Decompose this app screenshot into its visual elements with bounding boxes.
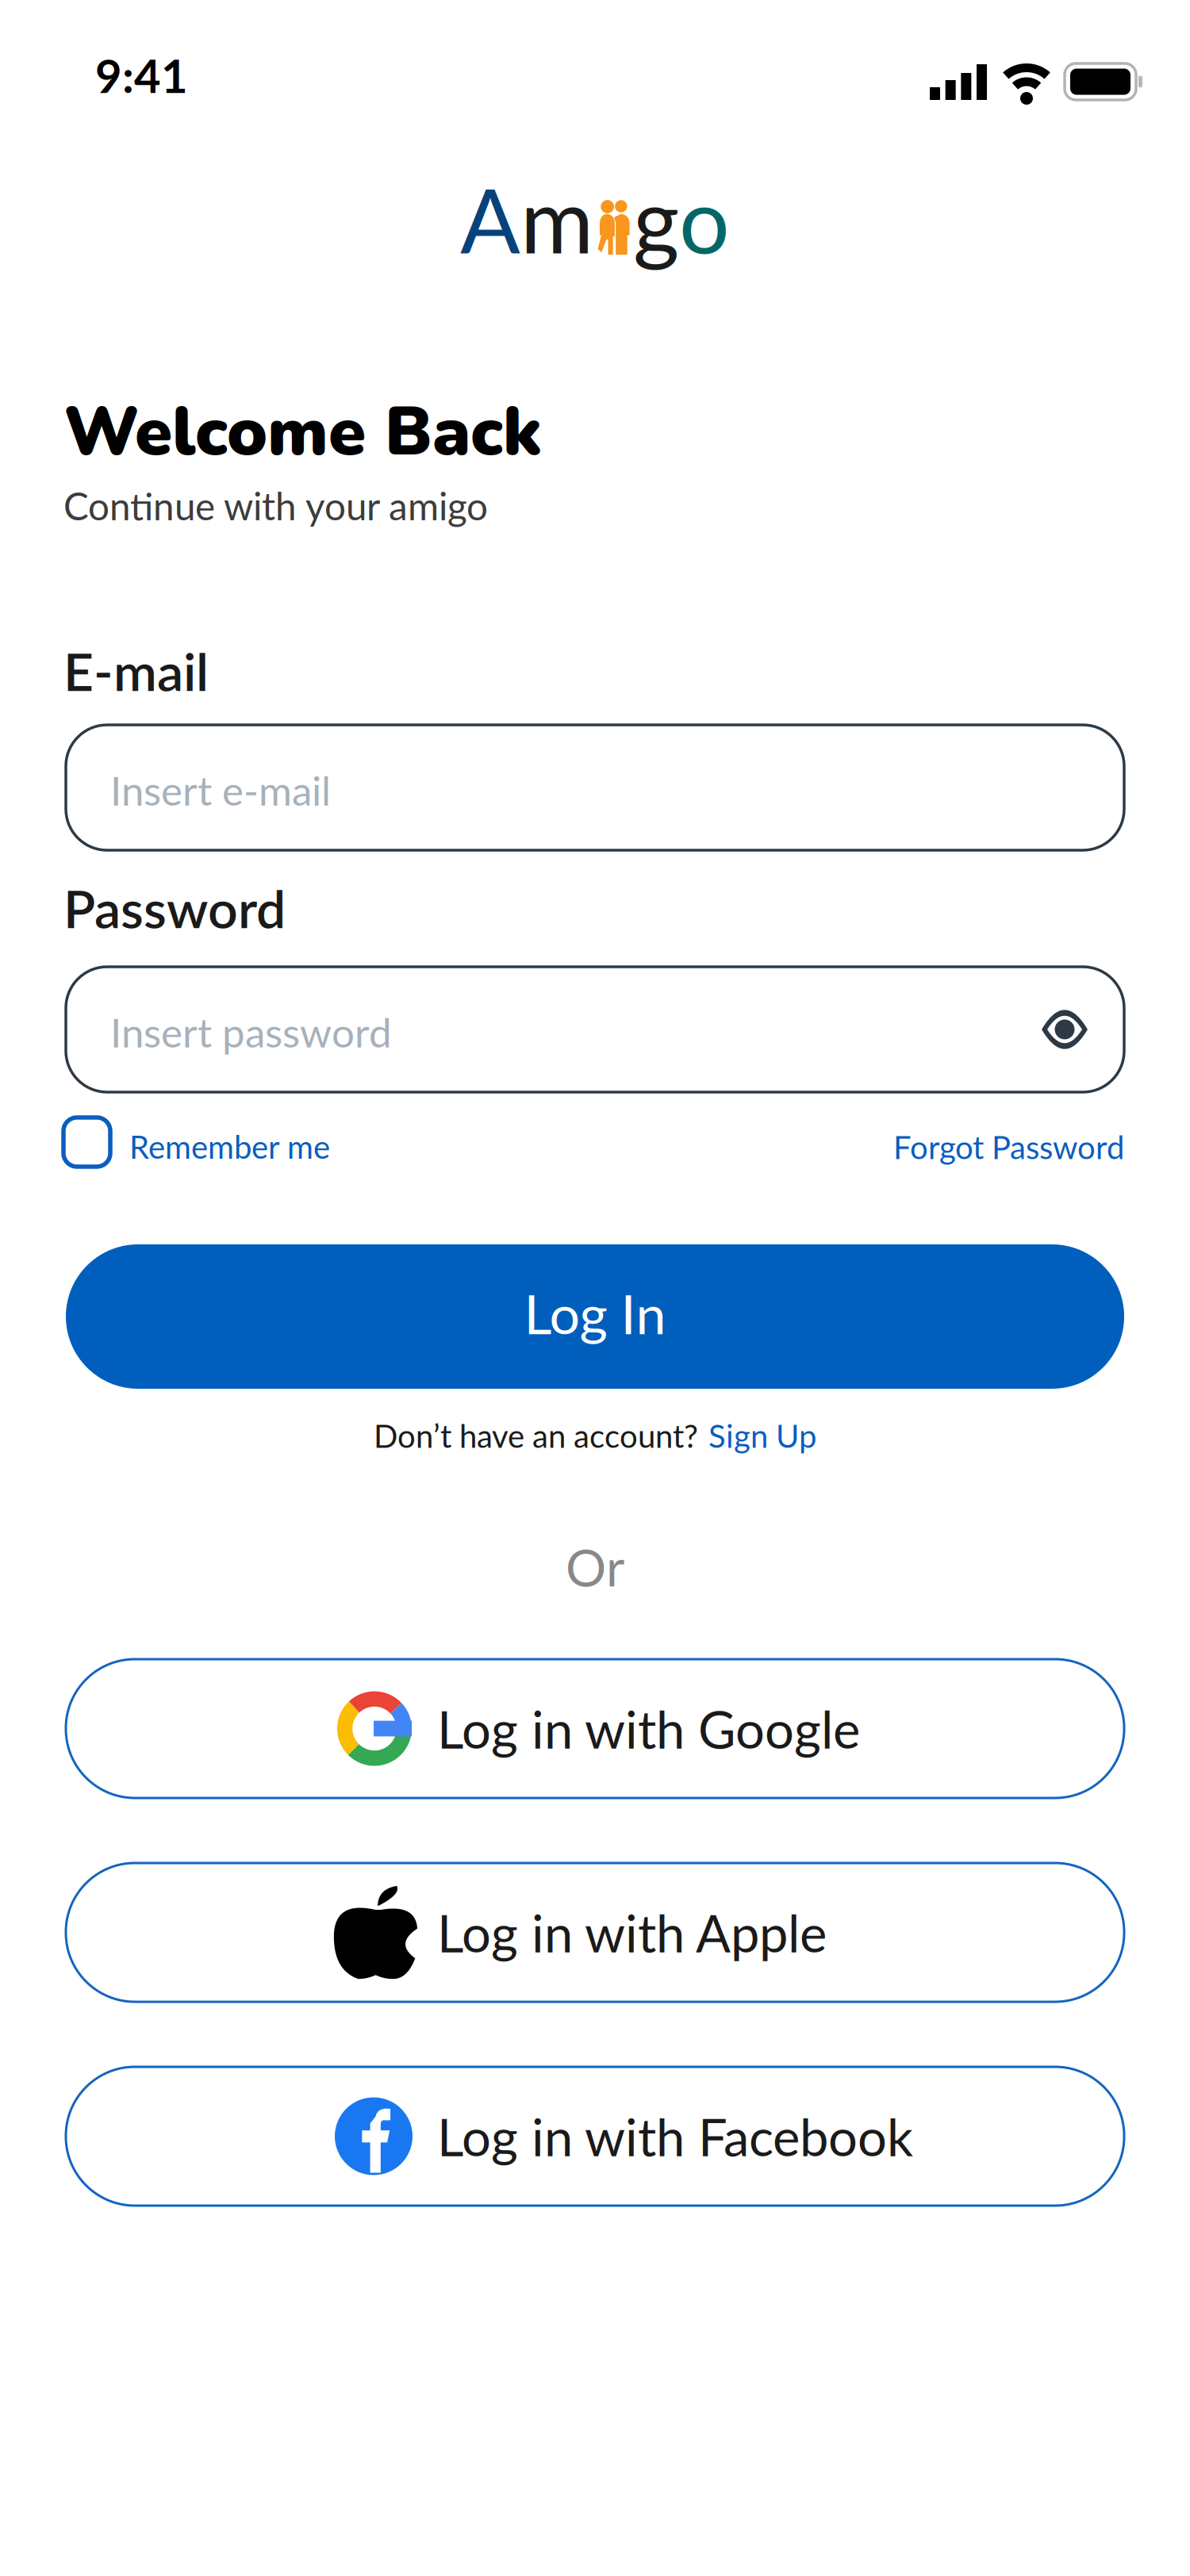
staticText: Welcome Back (63, 386, 542, 478)
staticText: E-mail (63, 639, 209, 702)
staticText: Log In (524, 1281, 666, 1346)
staticText: Forgot Password (893, 1128, 1124, 1166)
staticText: Password (63, 876, 286, 939)
staticText: A (460, 166, 520, 272)
button[interactable]: Forgot Password (893, 1128, 1124, 1166)
staticText: Insert e-mail (110, 766, 331, 814)
button[interactable]: Log in with Apple (66, 1863, 1124, 2002)
staticText: Continue with your amigo (63, 483, 488, 528)
staticText: Or (566, 1536, 624, 1597)
button[interactable]: Log in with Facebook (66, 2067, 1124, 2206)
button[interactable]: Log in with Google (66, 1659, 1124, 1798)
button[interactable]: Remember me (63, 1117, 330, 1167)
staticText: Remember me (129, 1127, 330, 1165)
staticText: Log in with Facebook (437, 2105, 913, 2167)
button[interactable]: Log In (66, 1244, 1124, 1389)
staticText: Sign Up (708, 1416, 816, 1455)
staticText: Insert password (110, 1008, 392, 1056)
staticText: m (520, 166, 593, 272)
staticText: o (679, 166, 730, 272)
staticText: Log in with Apple (437, 1901, 827, 1963)
staticText: g (633, 166, 679, 272)
staticText: 9:41 (95, 48, 188, 103)
button[interactable]: Sign Up (708, 1416, 816, 1455)
staticText: Don’t have an account? (374, 1416, 698, 1455)
staticText: Log in with Google (437, 1698, 860, 1759)
button[interactable]: Show password (1042, 1012, 1088, 1047)
